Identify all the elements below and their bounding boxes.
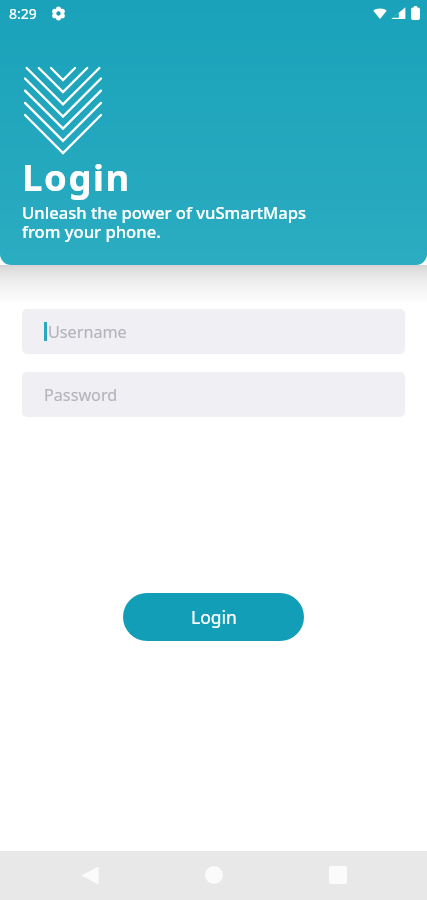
button[interactable]: Recent apps xyxy=(314,851,362,899)
staticText: Login xyxy=(191,605,237,629)
button[interactable]: Password xyxy=(22,372,405,417)
staticText: Password xyxy=(44,384,118,406)
button[interactable]: Home xyxy=(190,851,238,899)
staticText: Login xyxy=(22,152,131,202)
button[interactable]: Login xyxy=(123,593,304,641)
staticText: Unleash the power of vuSmartMaps from yo… xyxy=(22,201,307,243)
button[interactable]: Username xyxy=(22,309,405,354)
staticText: 8:29 xyxy=(9,4,37,23)
staticText: Username xyxy=(48,321,127,343)
button[interactable]: Back xyxy=(66,851,114,899)
